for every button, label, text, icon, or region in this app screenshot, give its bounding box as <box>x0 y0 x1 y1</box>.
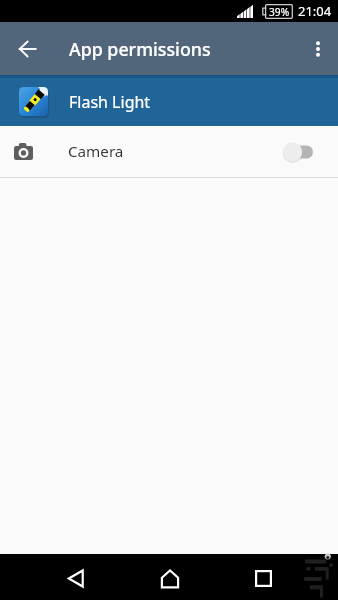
button[interactable]: Home <box>145 557 194 600</box>
button[interactable]: Recents <box>239 557 288 600</box>
button[interactable]: More options <box>298 22 338 75</box>
button[interactable]: Flash Light <box>0 78 338 126</box>
button[interactable]: Back <box>0 22 55 75</box>
staticText: Camera <box>68 141 124 162</box>
staticText: App permissions <box>69 37 211 61</box>
staticText: Flash Light <box>69 91 151 113</box>
button[interactable]: Back <box>51 557 100 600</box>
button[interactable]: Camera <box>0 126 338 177</box>
staticText: 21:04 <box>298 2 332 20</box>
staticText: 39% <box>269 5 290 19</box>
button[interactable] <box>284 142 313 162</box>
